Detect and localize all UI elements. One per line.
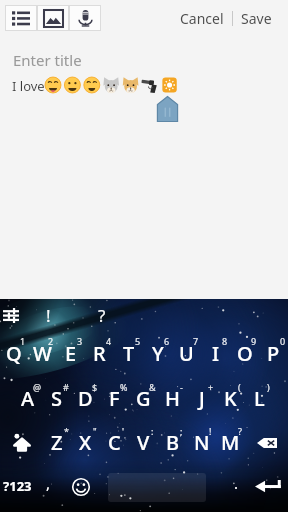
button[interactable]: Enter	[250, 473, 288, 499]
button[interactable]: ;	[158, 421, 187, 464]
button[interactable]: Voice note	[69, 5, 101, 31]
staticText: 3	[77, 335, 83, 347]
staticText: M	[221, 429, 240, 456]
staticText: 6	[164, 335, 170, 347]
button[interactable]: "	[71, 421, 100, 464]
staticText: Cancel	[180, 9, 224, 28]
staticText: 2	[48, 335, 54, 347]
button[interactable]: Checklist	[5, 5, 37, 31]
button[interactable]: (	[216, 377, 245, 420]
staticText: H	[165, 385, 180, 412]
button[interactable]: @	[14, 377, 42, 420]
button[interactable]: ?123	[0, 473, 35, 499]
staticText: B	[166, 429, 180, 456]
staticText: 8	[222, 335, 228, 347]
button[interactable]: ?	[89, 303, 114, 328]
staticText: )	[267, 381, 270, 393]
button[interactable]: 0	[259, 331, 288, 376]
button[interactable]: 3	[56, 331, 85, 376]
button[interactable]: 2	[28, 331, 56, 376]
staticText: @	[33, 381, 42, 393]
staticText: Save	[241, 9, 272, 28]
staticText: I	[212, 340, 220, 367]
button[interactable]: &	[129, 377, 158, 420]
button[interactable]: Emoji	[68, 474, 94, 500]
button[interactable]: 9	[230, 331, 259, 376]
button[interactable]: $	[71, 377, 100, 420]
staticText: .	[234, 473, 239, 493]
staticText: -	[180, 381, 183, 393]
button[interactable]: 7	[172, 331, 201, 376]
button[interactable]: 6	[143, 331, 172, 376]
button[interactable]: 5	[114, 331, 143, 376]
staticText: C	[108, 429, 121, 456]
staticText: D	[78, 385, 93, 412]
staticText: 4	[106, 335, 112, 347]
staticText: S	[51, 385, 62, 412]
staticText: :	[151, 425, 154, 437]
button[interactable]: !	[36, 303, 61, 328]
staticText: (	[238, 381, 241, 393]
button[interactable]: 8	[201, 331, 230, 376]
staticText: W	[33, 340, 52, 367]
button[interactable]: !	[187, 421, 216, 464]
button[interactable]: -	[158, 377, 187, 420]
staticText: Y	[152, 340, 164, 367]
staticText: E	[65, 340, 77, 367]
staticText: F	[109, 385, 120, 412]
button[interactable]: Cancel	[176, 9, 228, 28]
staticText: Q	[6, 340, 22, 367]
staticText: 9	[251, 335, 257, 347]
staticText: #	[63, 381, 69, 393]
button[interactable]: %	[100, 377, 129, 420]
staticText: ?	[238, 425, 242, 437]
staticText: "	[93, 425, 97, 437]
staticText: 1	[20, 335, 26, 347]
staticText: K	[224, 385, 237, 412]
staticText: 0	[280, 335, 286, 347]
staticText: !	[209, 425, 212, 437]
button[interactable]: )	[245, 377, 274, 420]
staticText: O	[237, 340, 253, 367]
staticText: +	[208, 381, 214, 393]
button[interactable]: 4	[85, 331, 114, 376]
button[interactable]: Insert image	[37, 5, 69, 31]
button[interactable]: #	[42, 377, 71, 420]
button[interactable]: Save	[237, 9, 276, 28]
button[interactable]: :	[129, 421, 158, 464]
staticText: ;	[180, 425, 183, 437]
button[interactable]: Space	[108, 473, 206, 502]
staticText: P	[267, 340, 280, 367]
button[interactable]: *	[43, 421, 71, 464]
staticText: 5	[135, 335, 141, 347]
button[interactable]: Backspace	[245, 421, 288, 464]
staticText: Enter title	[13, 50, 82, 70]
staticText: !	[46, 304, 51, 327]
staticText: ,	[46, 473, 51, 493]
button[interactable]: '	[100, 421, 129, 464]
staticText: ?123	[3, 477, 32, 495]
button[interactable]: ?	[216, 421, 245, 464]
button[interactable]: .	[224, 473, 248, 499]
staticText: U	[179, 340, 194, 367]
staticText: X	[79, 429, 92, 456]
staticText: 7	[193, 335, 199, 347]
staticText: '	[122, 425, 125, 437]
staticText: G	[136, 385, 151, 412]
staticText: N	[194, 429, 210, 456]
staticText: *	[64, 425, 69, 437]
staticText: I love	[12, 77, 45, 95]
staticText: &	[149, 381, 156, 393]
button[interactable]: Shift	[0, 421, 43, 464]
staticText: V	[137, 429, 150, 456]
button[interactable]: 1	[0, 331, 28, 376]
staticText: %	[120, 381, 128, 393]
staticText: J	[199, 385, 205, 412]
staticText: ?	[98, 304, 106, 327]
staticText: R	[93, 340, 106, 367]
button[interactable]: ,	[36, 473, 60, 499]
button[interactable]: +	[187, 377, 216, 420]
button[interactable]: Keyboard settings	[3, 308, 19, 323]
staticText: Z	[51, 429, 63, 456]
staticText: A	[21, 385, 35, 412]
